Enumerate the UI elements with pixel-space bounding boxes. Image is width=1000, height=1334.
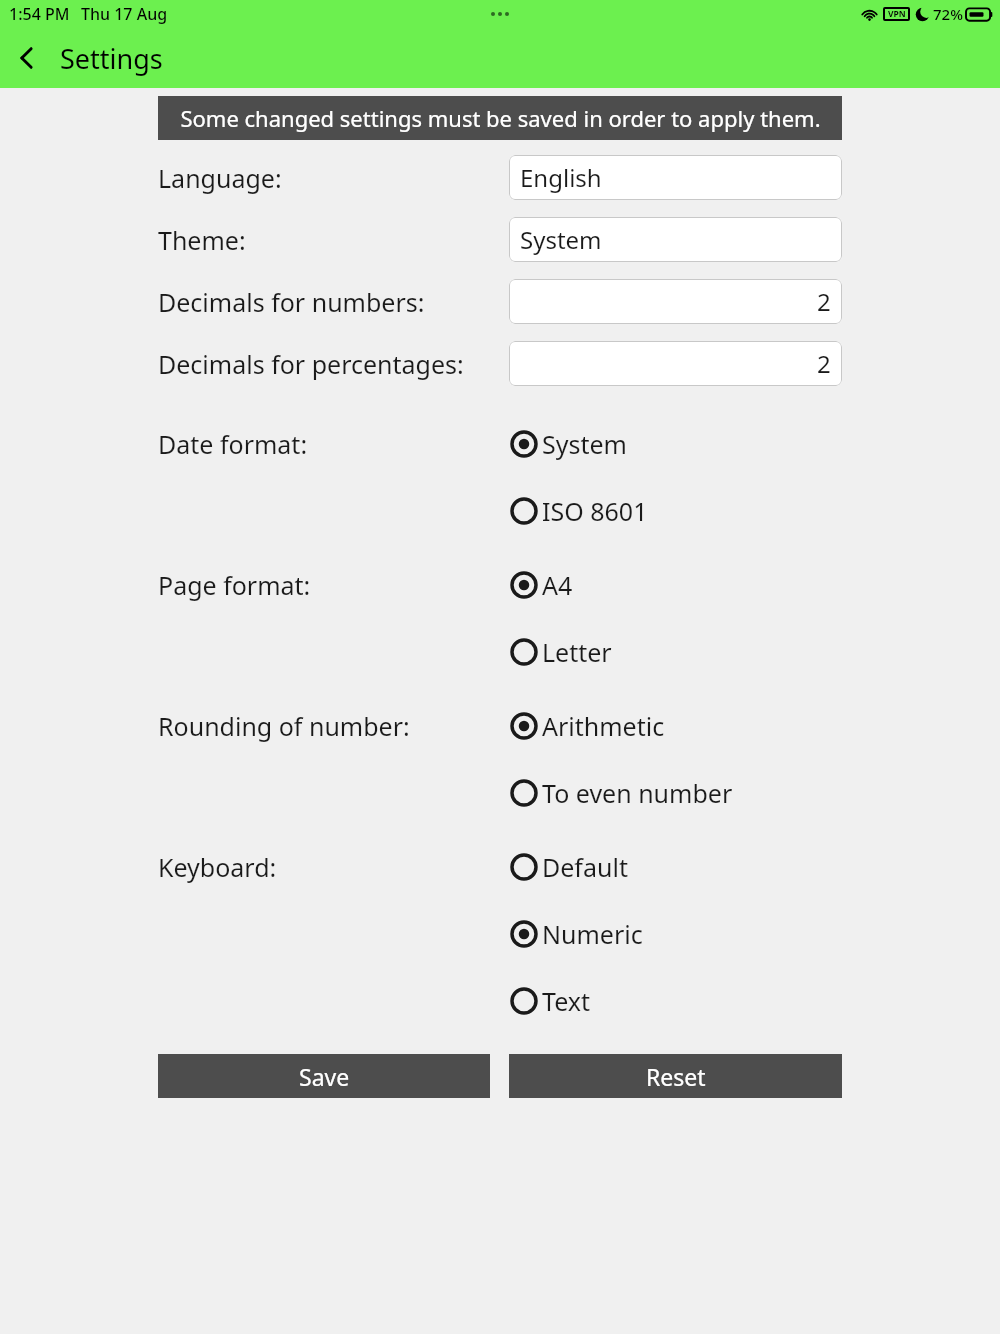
staticText: 2 [817, 285, 831, 318]
button[interactable]: Reset [509, 1054, 842, 1098]
button[interactable]: Letter [509, 618, 842, 685]
staticText: Arithmetic [542, 709, 665, 743]
button[interactable]: Numeric [509, 900, 842, 967]
staticText: Reset [646, 1061, 706, 1092]
staticText: Default [542, 850, 628, 884]
button[interactable]: System [509, 217, 842, 262]
button[interactable]: A4 [509, 551, 842, 618]
staticText: Page format: [158, 568, 311, 602]
button[interactable]: ISO 8601 [509, 477, 842, 544]
staticText: 72% [933, 4, 963, 24]
staticText: Language: [158, 161, 282, 195]
staticText: To even number [542, 776, 733, 810]
staticText: Settings [60, 40, 163, 77]
button[interactable]: English [509, 155, 842, 200]
staticText: System [542, 427, 627, 461]
button[interactable]: Save [158, 1054, 490, 1098]
staticText: Letter [542, 635, 612, 669]
button[interactable]: Default [509, 833, 842, 900]
button[interactable]: 2 [509, 279, 842, 324]
button[interactable]: 2 [509, 341, 842, 386]
button[interactable]: To even number [509, 759, 842, 826]
button[interactable]: Text [509, 967, 842, 1034]
staticText: A4 [542, 568, 573, 602]
button[interactable]: Arithmetic [509, 692, 842, 759]
staticText: Save [299, 1061, 350, 1092]
button[interactable]: Back [0, 31, 54, 85]
staticText: Date format: [158, 427, 308, 461]
button[interactable]: System [509, 410, 842, 477]
staticText: Numeric [542, 917, 643, 951]
staticText: VPN [888, 8, 906, 20]
staticText: 2 [817, 347, 831, 380]
staticText: Rounding of number: [158, 709, 410, 743]
staticText: ISO 8601 [542, 494, 648, 528]
staticText: Theme: [158, 223, 246, 257]
staticText: Some changed settings must be saved in o… [180, 103, 821, 133]
staticText: System [520, 223, 602, 256]
staticText: English [520, 161, 602, 194]
staticText: Text [542, 984, 591, 1018]
staticText: Thu 17 Aug [81, 3, 168, 25]
staticText: 1:54 PM [9, 3, 70, 25]
staticText: Decimals for percentages: [158, 347, 464, 381]
staticText: Keyboard: [158, 850, 277, 884]
staticText: Decimals for numbers: [158, 285, 425, 319]
